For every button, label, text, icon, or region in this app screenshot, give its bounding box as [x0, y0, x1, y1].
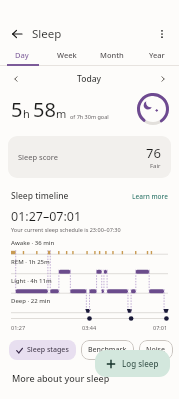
button[interactable]: Next day	[156, 72, 170, 86]
staticText: Today	[77, 73, 101, 85]
staticText: REM · 1h 25m	[11, 258, 50, 266]
staticText: Learn more	[132, 192, 168, 201]
staticText: 01:27–07:01	[11, 208, 82, 225]
staticText: Log sleep	[122, 358, 159, 369]
staticText: Fair	[150, 162, 161, 170]
staticText: Sleep timeline	[11, 190, 132, 202]
staticText: Day	[15, 50, 29, 60]
staticText: 76	[146, 144, 161, 162]
staticText: 01:27	[11, 324, 26, 331]
staticText: Benchmark	[88, 345, 127, 355]
staticText: Year	[149, 50, 165, 60]
button[interactable]: Day	[0, 46, 44, 64]
staticText: Sleep score	[18, 152, 146, 162]
staticText: h	[23, 106, 30, 121]
staticText: Light · 4h 11m	[11, 277, 52, 285]
button[interactable]: Back	[8, 25, 26, 43]
button[interactable]: Week	[44, 46, 89, 64]
button[interactable]: Noise	[139, 340, 173, 360]
staticText: Your current sleep schedule is 23:00–07:…	[11, 226, 121, 233]
staticText: 5	[11, 96, 23, 123]
staticText: Week	[57, 50, 77, 60]
button[interactable]: Log sleep	[95, 350, 170, 377]
button[interactable]: Year	[134, 46, 179, 64]
staticText: 58	[33, 96, 56, 123]
staticText: Awake · 36 min	[11, 239, 55, 247]
staticText: m	[56, 106, 67, 121]
staticText: More about your sleep	[12, 372, 110, 384]
button[interactable]: Benchmark	[81, 340, 134, 360]
button[interactable]: Previous day	[9, 72, 23, 86]
staticText: Noise	[146, 345, 166, 355]
staticText: 03:44	[82, 324, 97, 331]
staticText: Sleep stages	[27, 345, 69, 355]
button[interactable]: Learn more	[132, 192, 168, 201]
button[interactable]: Sleep stages	[9, 340, 76, 360]
staticText: of 7h 30m goal	[70, 113, 109, 120]
staticText: Sleep	[32, 26, 62, 42]
button[interactable]: Sleep score	[8, 136, 171, 178]
staticText: Deep · 22 min	[11, 297, 51, 305]
staticText: 07:01	[153, 324, 168, 331]
button[interactable]: More options	[153, 25, 171, 43]
staticText: Month	[100, 50, 124, 60]
button[interactable]: Month	[89, 46, 134, 64]
